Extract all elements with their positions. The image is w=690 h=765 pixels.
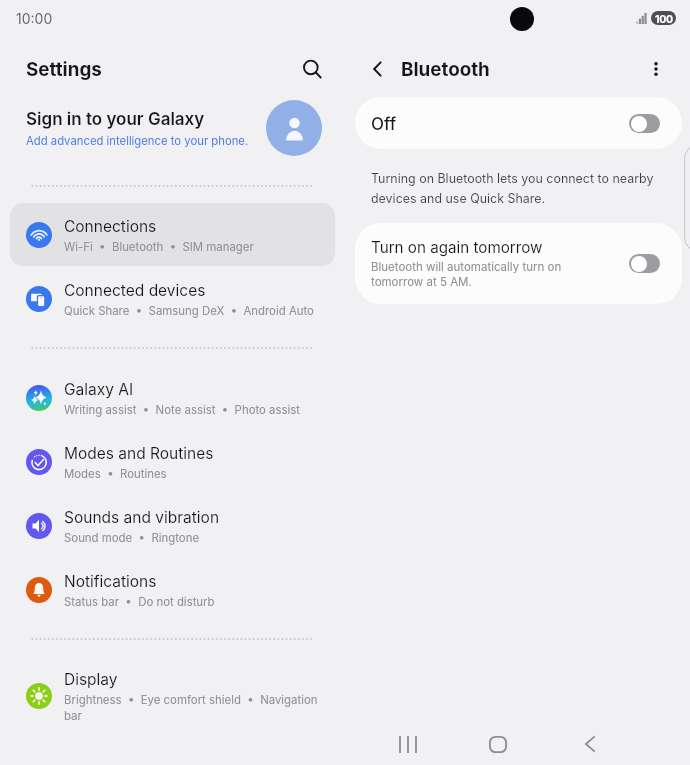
staticText: Writing assist • Note assist • Photo ass…	[64, 401, 326, 417]
button[interactable]: Off	[355, 97, 682, 149]
button[interactable]: Sign in to your Galaxy	[0, 98, 345, 158]
staticText: 100	[655, 12, 673, 25]
button[interactable]: Galaxy AI	[10, 367, 335, 429]
button[interactable]: Home	[474, 720, 522, 765]
staticText: Modes • Routines	[64, 465, 326, 481]
staticText: Wi-Fi • Bluetooth • SIM manager	[64, 238, 326, 254]
staticText: Galaxy AI	[64, 380, 134, 399]
button[interactable]: Connections	[10, 204, 335, 266]
staticText: Notifications	[64, 572, 157, 591]
staticText: Sounds and vibration	[64, 508, 220, 527]
button[interactable]: Connected devices	[10, 268, 335, 330]
button[interactable]: Back	[566, 720, 614, 765]
button[interactable]: Recent apps	[384, 720, 432, 765]
staticText: Bluetooth will automatically turn on tom…	[371, 259, 567, 289]
button[interactable]: Turn on again tomorrow	[355, 223, 682, 304]
staticText: Display	[64, 670, 118, 689]
button[interactable]: Toggle	[629, 114, 660, 133]
staticText: Add advanced intelligence to your phone.	[26, 133, 249, 147]
button[interactable]: More options	[640, 53, 672, 85]
button[interactable]: Toggle	[629, 254, 660, 273]
button[interactable]: Sounds and vibration	[10, 495, 335, 557]
button[interactable]: Modes and Routines	[10, 431, 335, 493]
staticText: Connected devices	[64, 281, 206, 300]
staticText: Brightness • Eye comfort shield • Naviga…	[64, 691, 322, 723]
button[interactable]: Notifications	[10, 559, 335, 621]
staticText: Off	[371, 113, 397, 135]
staticText: Modes and Routines	[64, 444, 214, 463]
staticText: 10:00	[16, 10, 53, 28]
button[interactable]: Navigate up	[362, 53, 394, 85]
staticText: Turning on Bluetooth lets you connect to…	[371, 167, 671, 207]
staticText: Sound mode • Ringtone	[64, 529, 326, 545]
staticText: Turn on again tomorrow	[371, 237, 543, 256]
button[interactable]: Display	[10, 657, 335, 735]
button[interactable]: Search	[296, 53, 328, 85]
staticText: Quick Share • Samsung DeX • Android Auto	[64, 302, 326, 318]
staticText: Settings	[26, 57, 102, 81]
staticText: Sign in to your Galaxy	[26, 108, 205, 130]
staticText: Bluetooth	[401, 57, 490, 81]
staticText: Status bar • Do not disturb	[64, 593, 326, 609]
staticText: Connections	[64, 217, 157, 236]
